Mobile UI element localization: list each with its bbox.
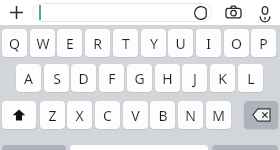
staticText: Y — [150, 34, 158, 53]
button[interactable]: K — [210, 64, 235, 92]
staticText: D — [78, 69, 89, 88]
staticText: Q — [9, 34, 20, 53]
button[interactable]: L — [238, 64, 263, 92]
staticText: N — [185, 106, 196, 125]
staticText: P — [259, 34, 268, 53]
staticText: V — [131, 106, 140, 125]
button[interactable]: H — [155, 64, 180, 92]
button[interactable]: A — [16, 64, 41, 92]
staticText: I — [206, 34, 211, 53]
button[interactable]: Voice input — [253, 2, 277, 23]
staticText: B — [158, 106, 168, 125]
staticText: U — [175, 34, 186, 53]
button[interactable]: Backspace — [244, 101, 278, 129]
button[interactable]: T — [113, 29, 138, 57]
staticText: T — [122, 34, 130, 53]
button[interactable]: Z — [40, 101, 65, 129]
button[interactable]: F — [99, 64, 124, 92]
button[interactable]: R — [85, 29, 110, 57]
button[interactable]: Space — [70, 145, 208, 150]
button[interactable]: D — [71, 64, 96, 92]
staticText: F — [108, 69, 116, 88]
staticText: K — [218, 69, 227, 88]
button[interactable]: Q — [2, 29, 27, 57]
staticText: G — [134, 69, 145, 88]
staticText: X — [75, 106, 84, 125]
staticText: O — [231, 34, 242, 53]
staticText: M — [212, 106, 225, 125]
button[interactable]: Enter — [212, 145, 278, 150]
button[interactable]: U — [168, 29, 193, 57]
button[interactable]: X — [67, 101, 92, 129]
button[interactable]: J — [182, 64, 207, 92]
button[interactable]: M — [206, 101, 231, 129]
button[interactable]: I — [196, 29, 221, 57]
button[interactable]: B — [150, 101, 175, 129]
button[interactable]: Shift — [2, 101, 36, 129]
staticText: Z — [48, 106, 57, 125]
button[interactable]: Stickers — [192, 4, 209, 21]
button[interactable]: N — [178, 101, 203, 129]
button[interactable]: S — [44, 64, 69, 92]
button[interactable]: V — [123, 101, 148, 129]
button[interactable]: Symbols — [2, 145, 66, 150]
staticText: H — [162, 69, 173, 88]
staticText: R — [93, 34, 102, 53]
button[interactable]: E — [57, 29, 82, 57]
button[interactable]: O — [224, 29, 249, 57]
staticText: A — [24, 69, 33, 88]
staticText: J — [193, 69, 197, 88]
staticText: L — [247, 69, 255, 88]
button[interactable]: P — [251, 29, 276, 57]
button[interactable]: Add attachment — [4, 2, 28, 23]
button[interactable]: Y — [141, 29, 166, 57]
button[interactable]: Stickers — [32, 3, 212, 22]
button[interactable]: G — [127, 64, 152, 92]
button[interactable]: C — [95, 101, 120, 129]
button[interactable]: Camera — [221, 2, 245, 23]
button[interactable]: W — [30, 29, 55, 57]
staticText: W — [36, 34, 50, 53]
staticText: C — [103, 106, 112, 125]
staticText: E — [66, 34, 74, 53]
staticText: S — [53, 69, 61, 88]
